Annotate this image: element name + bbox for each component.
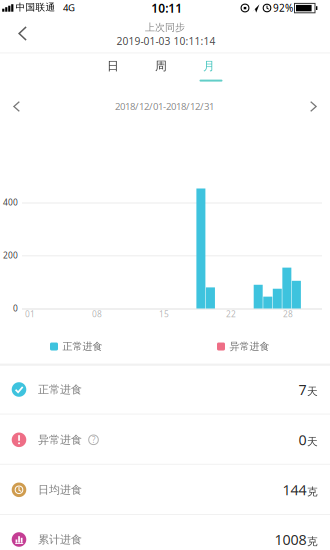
button[interactable]: 周 [139, 53, 183, 79]
button[interactable]: Next month [294, 91, 330, 121]
staticText: 2019-01-03 10:11:14 [116, 34, 215, 48]
staticText: 克 [307, 485, 318, 498]
staticText: 天 [307, 435, 318, 448]
staticText: ? [92, 434, 95, 445]
staticText: 01 [25, 308, 35, 320]
staticText: 周 [155, 58, 167, 73]
staticText: 天 [307, 385, 318, 398]
staticText: 0 [13, 302, 18, 314]
staticText: 月 [203, 58, 215, 73]
staticText: 正常进食 [38, 383, 82, 396]
button[interactable]: 日 [91, 53, 135, 79]
button[interactable]: 月 [187, 53, 231, 79]
staticText: 92% [273, 1, 293, 15]
staticText: 4G [63, 1, 75, 14]
staticText: 1008 [274, 530, 306, 549]
staticText: 累计进食 [38, 533, 82, 546]
staticText: 15 [159, 308, 169, 320]
staticText: 日均进食 [38, 483, 82, 497]
staticText: 异常进食 [229, 340, 269, 353]
staticText: 7 [298, 380, 306, 399]
staticText: 克 [307, 535, 318, 548]
staticText: 上次同步 [145, 21, 185, 34]
staticText: 200 [3, 249, 18, 261]
staticText: 28 [283, 308, 293, 320]
staticText: 中国联通 [15, 1, 55, 13]
staticText: 10:11 [151, 0, 182, 16]
staticText: 日 [107, 58, 119, 73]
staticText: 400 [3, 196, 18, 208]
button[interactable]: Previous month [0, 91, 36, 121]
staticText: 0 [298, 430, 306, 449]
button[interactable]: Back [0, 17, 44, 50]
staticText: 正常进食 [62, 340, 102, 353]
staticText: 2018/12/01-2018/12/31 [115, 100, 214, 113]
staticText: 144 [282, 480, 306, 499]
staticText: 异常进食 [38, 433, 82, 447]
staticText: 08 [92, 308, 102, 320]
button[interactable]: About abnormal eating [88, 434, 99, 445]
staticText: 22 [226, 308, 236, 320]
